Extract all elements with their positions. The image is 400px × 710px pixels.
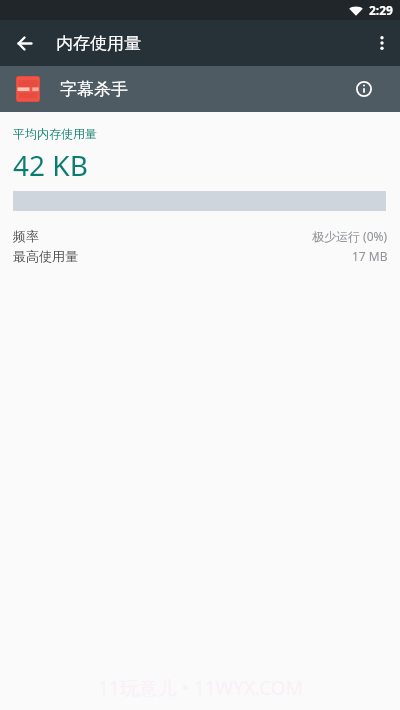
staticText: 42 KB bbox=[13, 146, 88, 184]
staticText: 极少运行 (0%) bbox=[312, 228, 388, 244]
staticText: 平均内存使用量 bbox=[13, 126, 97, 141]
button[interactable]: Back bbox=[4, 23, 44, 63]
button[interactable]: More options bbox=[364, 25, 400, 61]
button[interactable]: App info bbox=[348, 73, 380, 105]
staticText: 11玩意儿 • 11WYX.COM bbox=[98, 675, 303, 701]
staticText: 字幕杀手 bbox=[60, 79, 128, 100]
staticText: 内存使用量 bbox=[56, 33, 141, 54]
staticText: 17 MB bbox=[352, 248, 388, 264]
staticText: 最高使用量 bbox=[13, 248, 78, 264]
button[interactable]: 字幕杀手 bbox=[0, 66, 400, 112]
staticText: 频率 bbox=[13, 228, 39, 244]
staticText: 2:29 bbox=[369, 2, 393, 18]
